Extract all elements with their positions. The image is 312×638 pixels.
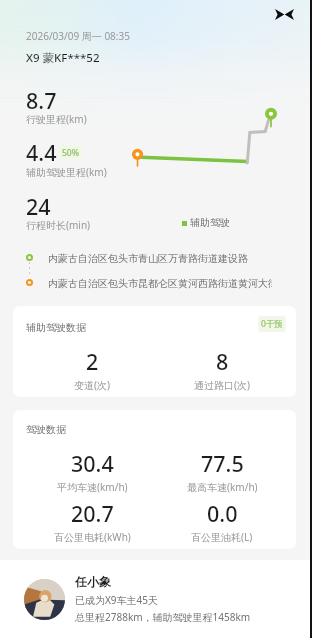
staticText: 30.4: [71, 449, 114, 478]
button[interactable]: 辅助驾驶数据: [13, 306, 296, 397]
button[interactable]: XPeng logo: [268, 0, 300, 30]
staticText: 百公里油耗(L): [191, 530, 253, 544]
button[interactable]: 驾驶数据: [13, 410, 296, 549]
staticText: 驾驶数据: [26, 423, 66, 436]
staticText: 77.5: [201, 449, 244, 478]
staticText: 8.7: [26, 86, 57, 115]
staticText: 内蒙古自治区包头市昆都仑区黄河西路街道黄河大街: [48, 277, 272, 290]
staticText: 0干预: [261, 318, 283, 330]
staticText: 变道(次): [74, 378, 110, 392]
staticText: 2026/03/09 周一 08:35: [26, 29, 130, 43]
staticText: 内蒙古自治区包头市青山区万青路街道建设路: [48, 252, 248, 265]
staticText: 50%: [62, 147, 79, 159]
staticText: 通过路口(次): [194, 378, 250, 392]
staticText: 4.4: [26, 138, 57, 167]
staticText: 2: [86, 347, 99, 376]
staticText: 平均车速(km/h): [57, 480, 128, 494]
staticText: 辅助驾驶数据: [26, 321, 86, 334]
staticText: 最高车速(km/h): [187, 480, 258, 494]
staticText: 总里程2788km，辅助驾驶里程1458km: [75, 610, 251, 624]
staticText: 行驶里程(km): [26, 112, 87, 126]
staticText: 8: [216, 347, 229, 376]
staticText: 百公里电耗(kWh): [54, 530, 131, 544]
staticText: 已成为X9车主45天: [75, 593, 159, 607]
staticText: 辅助驾驶: [190, 216, 230, 229]
staticText: 行程时长(min): [26, 218, 91, 232]
staticText: 20.7: [71, 499, 114, 528]
button[interactable]: 任小象: [0, 560, 312, 638]
staticText: 任小象: [75, 574, 111, 589]
staticText: 24: [26, 192, 51, 221]
staticText: 辅助驾驶里程(km): [26, 165, 107, 179]
staticText: 0.0: [207, 499, 238, 528]
staticText: X9 蒙KF***52: [26, 50, 100, 66]
